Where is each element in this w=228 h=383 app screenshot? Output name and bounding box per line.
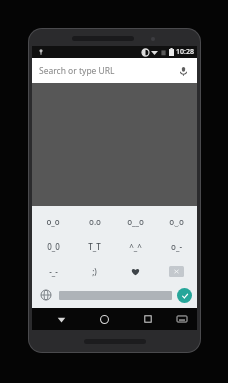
other: Backspace	[169, 266, 184, 277]
staticText: o_-	[171, 241, 182, 252]
staticText: ;)	[92, 266, 97, 277]
button[interactable]: ;)	[74, 259, 115, 284]
button[interactable]: Home	[83, 308, 126, 330]
staticText: o_o	[46, 216, 60, 227]
button[interactable]: Enter	[177, 288, 192, 303]
button[interactable]: Voice search	[176, 64, 190, 78]
button[interactable]: o.o	[74, 209, 115, 234]
button[interactable]: Backspace	[156, 259, 197, 284]
button[interactable]: Search or type URL	[32, 58, 197, 83]
button[interactable]: ^_^	[115, 234, 156, 259]
button[interactable]: o‿o	[156, 209, 197, 234]
button[interactable]: o__o	[115, 209, 156, 234]
button[interactable]: o_-	[156, 234, 197, 259]
button[interactable]: Recent apps	[126, 308, 169, 330]
button[interactable]: 0_0	[32, 234, 74, 259]
button[interactable]: T_T	[74, 234, 115, 259]
staticText: ^_^	[129, 241, 142, 252]
staticText: 10:28	[176, 47, 194, 57]
button[interactable]: Back	[40, 308, 83, 330]
button[interactable]: o_o	[32, 209, 74, 234]
button[interactable]: -_-	[32, 259, 74, 284]
staticText: o__o	[127, 216, 144, 227]
staticText: 0_0	[47, 241, 60, 252]
staticText: Search or type URL	[39, 65, 176, 77]
staticText: o‿o	[169, 216, 184, 227]
staticText: -_-	[49, 266, 58, 277]
staticText: o.o	[89, 216, 101, 227]
button[interactable]: Change language	[37, 286, 55, 304]
staticText: T_T	[88, 241, 101, 252]
button[interactable]: Switch keyboard	[169, 308, 195, 330]
button[interactable]	[115, 259, 156, 284]
